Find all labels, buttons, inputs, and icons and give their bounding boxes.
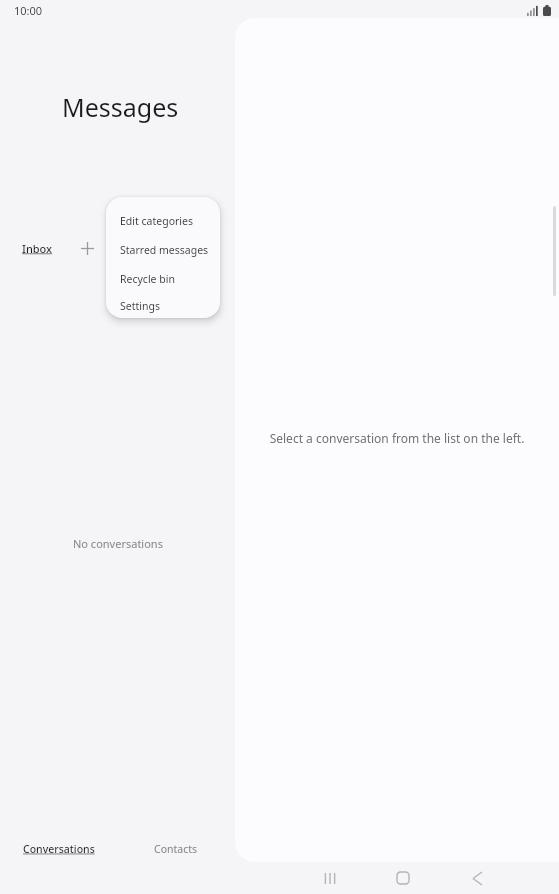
button[interactable]: Edit categories [106, 197, 220, 235]
button[interactable]: Starred messages [106, 235, 220, 264]
staticText: Recycle bin [120, 272, 175, 286]
staticText: Starred messages [120, 243, 209, 257]
staticText: Inbox [22, 241, 53, 256]
button[interactable]: Add category [73, 234, 101, 262]
button[interactable]: Home [385, 862, 421, 894]
button[interactable]: Conversations [0, 834, 117, 864]
staticText: Conversations [23, 842, 95, 856]
staticText: Settings [120, 299, 160, 313]
button[interactable]: Settings [106, 293, 220, 318]
button[interactable]: Contacts [117, 834, 235, 864]
staticText: 10:00 [14, 3, 43, 18]
staticText: No conversations [73, 536, 163, 551]
button[interactable]: Inbox [14, 237, 61, 260]
staticText: Edit categories [120, 214, 193, 228]
staticText: Contacts [154, 842, 198, 856]
button[interactable]: Back [459, 862, 495, 894]
staticText: Select a conversation from the list on t… [235, 430, 559, 446]
button[interactable]: Recent apps [312, 862, 348, 894]
button[interactable]: Recycle bin [106, 264, 220, 293]
staticText: Messages [62, 90, 179, 124]
